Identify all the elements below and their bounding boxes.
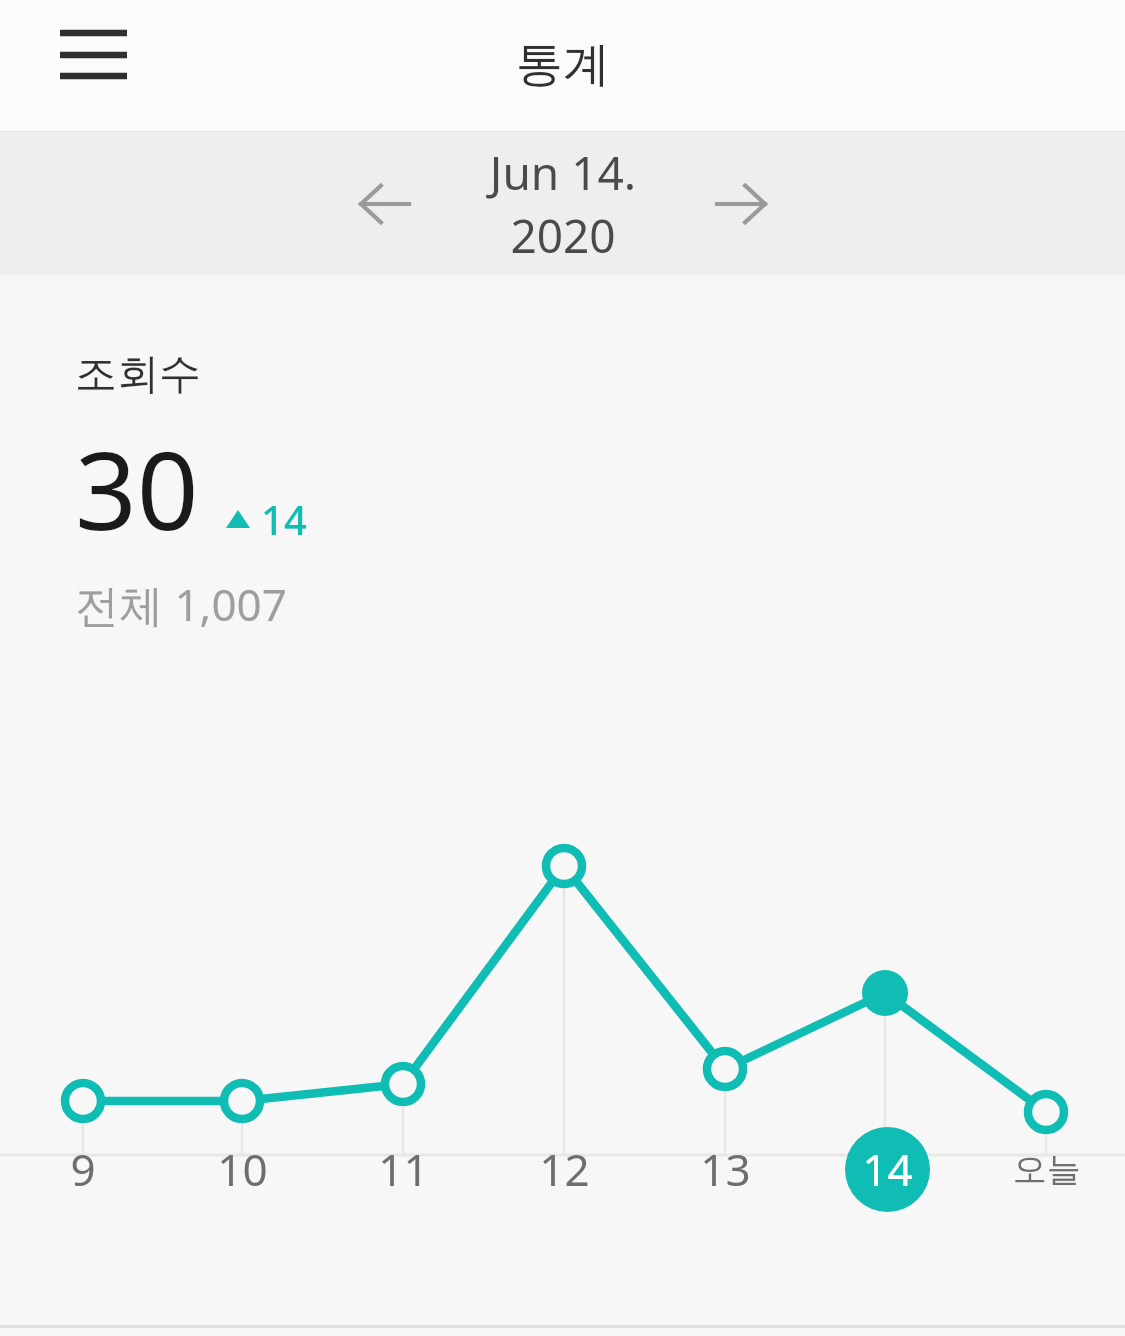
staticText: 오늘: [1013, 1148, 1081, 1191]
button[interactable]: Next day: [693, 156, 789, 252]
staticText: Jun 14. 2020: [433, 141, 693, 267]
staticText: 조회수: [75, 348, 201, 401]
staticText: 12: [539, 1139, 590, 1199]
button[interactable]: Jun 14. 2020: [433, 141, 693, 267]
button[interactable]: 10: [187, 1114, 297, 1224]
staticText: 14: [261, 492, 307, 546]
staticText: 9: [70, 1139, 96, 1199]
staticText: 13: [700, 1139, 751, 1199]
button[interactable]: Previous day: [337, 156, 433, 252]
staticText: 10: [217, 1139, 268, 1199]
button[interactable]: 11: [348, 1114, 458, 1224]
button[interactable]: 오늘: [992, 1114, 1102, 1224]
button[interactable]: 12: [509, 1114, 619, 1224]
staticText: 통계: [516, 35, 610, 94]
button[interactable]: 14: [832, 1114, 942, 1224]
staticText: 14: [862, 1139, 913, 1199]
staticText: 30: [75, 415, 199, 562]
staticText: 전체 1,007: [75, 574, 287, 634]
staticText: 11: [378, 1139, 429, 1199]
button[interactable]: 9: [28, 1114, 138, 1224]
button[interactable]: Menu: [40, 12, 148, 120]
button[interactable]: 13: [670, 1114, 780, 1224]
